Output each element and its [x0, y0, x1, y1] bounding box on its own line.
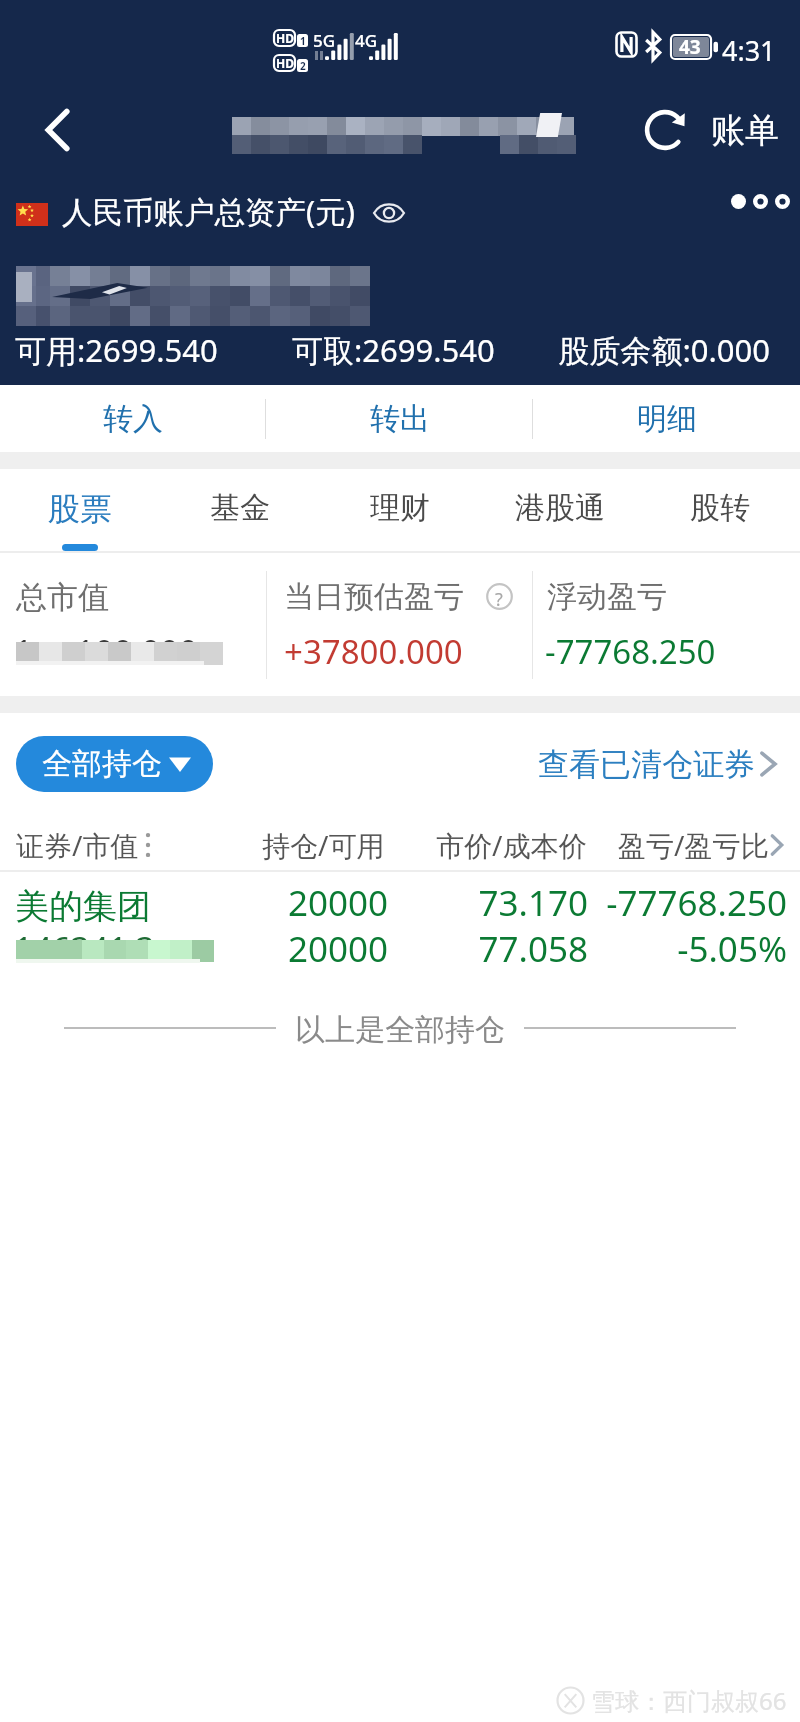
button[interactable]: Account pages	[725, 186, 796, 216]
button[interactable]: 查看已清仓证券	[530, 739, 788, 789]
staticText: +37800.000	[284, 629, 463, 674]
button[interactable]: Back	[13, 85, 103, 175]
button[interactable]: 市价/成本价	[424, 820, 600, 870]
staticText: HD	[276, 30, 294, 46]
staticText: 全部持仓	[42, 745, 162, 783]
button[interactable]: 明细	[533, 385, 800, 452]
button[interactable]: 港股通	[480, 469, 640, 551]
staticText: 以上是全部持仓	[295, 1011, 505, 1049]
staticText: 43	[679, 34, 701, 60]
staticText: 浮动盈亏	[547, 578, 667, 616]
staticText: 当日预估盈亏	[284, 578, 464, 616]
staticText: 明细	[637, 400, 697, 438]
staticText: 20000	[170, 879, 388, 927]
staticText: 4G	[355, 29, 378, 52]
staticText: 股票	[48, 489, 112, 529]
staticText: 股转	[690, 489, 750, 527]
staticText: ?	[495, 587, 503, 612]
button[interactable]: 理财	[320, 469, 480, 551]
staticText: 5G	[313, 29, 336, 52]
staticText: 20000	[170, 925, 388, 973]
button[interactable]: Help	[486, 577, 524, 615]
staticText: 雪球：西门叔叔66	[591, 1684, 787, 1717]
button[interactable]: 证券/市值	[8, 820, 172, 870]
staticText: 可取:2699.540	[292, 329, 495, 371]
staticText: 总市值	[16, 578, 109, 617]
staticText: 股质余额:0.000	[400, 329, 770, 371]
staticText: 证券/市值	[16, 826, 139, 864]
staticText: 可用:2699.540	[15, 329, 218, 371]
staticText: 市价/成本价	[436, 826, 587, 864]
staticText: 美的集团	[15, 885, 151, 928]
staticText: -77768.250	[545, 629, 716, 674]
staticText: 1 100.000	[14, 629, 198, 674]
staticText: 盈亏/盈亏比	[618, 826, 769, 864]
button[interactable]: 持仓/可用	[250, 820, 400, 870]
staticText: 港股通	[515, 489, 605, 527]
staticText: -77768.250	[562, 879, 787, 927]
button[interactable]: 账单	[700, 94, 790, 166]
staticText: 理财	[370, 489, 430, 527]
staticText: 基金	[210, 489, 270, 527]
staticText: 77.058	[370, 925, 588, 973]
button[interactable]: 股转	[640, 469, 800, 551]
button[interactable]: 基金	[160, 469, 320, 551]
staticText: 转出	[370, 400, 430, 438]
staticText: 人民币账户总资产(元)	[62, 190, 355, 232]
button[interactable]: 盈亏/盈亏比	[610, 820, 800, 870]
staticText: 146341 3	[14, 926, 155, 971]
staticText: 1	[300, 34, 306, 47]
staticText: 4:31	[722, 32, 776, 69]
button[interactable]: 股票	[0, 469, 160, 551]
staticText: 转入	[103, 400, 163, 438]
staticText: 账单	[711, 109, 779, 152]
button[interactable]: 美的集团	[0, 872, 800, 980]
staticText: 持仓/可用	[262, 826, 385, 864]
staticText: 73.170	[370, 879, 588, 927]
staticText: -5.05%	[562, 925, 787, 973]
button[interactable]: Toggle balance visibility	[370, 194, 408, 232]
staticText: 查看已清仓证券	[538, 745, 755, 784]
button[interactable]: 转出	[266, 385, 533, 452]
staticText: HD	[276, 55, 294, 71]
button[interactable]: Refresh	[629, 94, 701, 166]
staticText: 2	[300, 59, 306, 72]
button[interactable]: 全部持仓	[16, 736, 213, 792]
button[interactable]: 转入	[0, 385, 266, 452]
